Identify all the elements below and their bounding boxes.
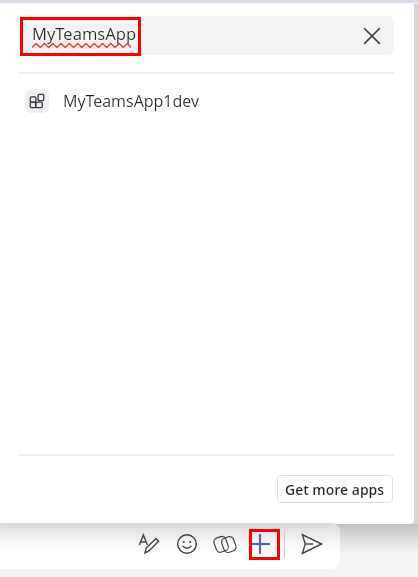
button[interactable]: Get more apps — [277, 475, 393, 503]
button[interactable]: GIF — [206, 525, 244, 563]
button[interactable]: More apps — [244, 528, 276, 560]
staticText: MyTeamsApp1dev — [63, 90, 199, 112]
staticText: Get more apps — [285, 480, 385, 499]
button[interactable]: Emoji — [168, 525, 206, 563]
button[interactable]: Format text — [130, 525, 168, 563]
button[interactable]: MyTeamsApp — [20, 16, 394, 55]
button[interactable]: Send — [293, 525, 331, 563]
button[interactable]: MyTeamsApp1dev — [0, 79, 414, 123]
button[interactable]: Clear search — [360, 24, 384, 48]
staticText: MyTeamsApp — [32, 22, 137, 45]
